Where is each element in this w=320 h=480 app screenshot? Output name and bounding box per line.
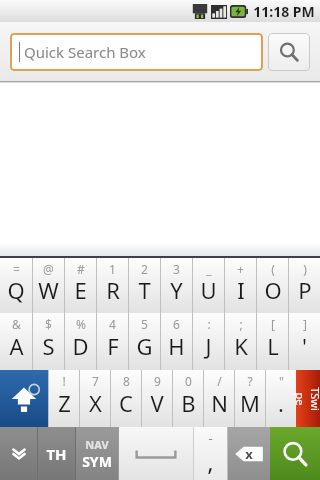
staticText: D [72, 331, 89, 361]
staticText: M [240, 388, 260, 418]
staticText: ( [271, 261, 275, 277]
staticText: R [106, 275, 120, 305]
button[interactable]: " [266, 370, 296, 427]
staticText: K [234, 331, 248, 361]
staticText: % [76, 316, 86, 332]
staticText: = [13, 261, 20, 277]
staticText: S [42, 331, 55, 361]
staticText: E [74, 275, 87, 305]
button[interactable]: ; [225, 313, 256, 370]
staticText: 2 [141, 261, 148, 277]
staticText: 6 [173, 316, 180, 332]
button[interactable]: % [65, 313, 96, 370]
button[interactable]: Space [119, 427, 193, 480]
staticText: 3 [173, 261, 180, 277]
staticText: P [298, 275, 312, 305]
button[interactable]: Backspace [228, 427, 270, 480]
button[interactable]: _ [193, 258, 224, 313]
staticText: TSwipe [293, 387, 320, 411]
staticText: ' [302, 331, 307, 361]
staticText: NAV [85, 437, 109, 452]
staticText: J [205, 331, 212, 361]
button[interactable]: - [194, 427, 227, 480]
staticText: Quick Search Box [24, 42, 146, 62]
staticText: Q [7, 275, 25, 305]
button[interactable]: ! [49, 370, 79, 427]
button[interactable]: / [204, 370, 234, 427]
staticText: C [119, 388, 133, 418]
button[interactable]: 1 [97, 258, 128, 313]
staticText: 8 [123, 373, 130, 389]
button[interactable]: $ [33, 313, 64, 370]
staticText: T [138, 275, 151, 305]
staticText: ] [303, 316, 307, 332]
button[interactable]: 7 [80, 370, 110, 427]
button[interactable]: [ [257, 313, 288, 370]
staticText: L [267, 331, 279, 361]
button[interactable]: : [193, 313, 224, 370]
staticText: # [77, 261, 85, 277]
button[interactable]: 5 [129, 313, 160, 370]
staticText: O [264, 275, 282, 305]
staticText: B [181, 388, 196, 418]
staticText: @ [43, 261, 54, 277]
staticText: 5 [141, 316, 148, 332]
staticText: ) [303, 261, 307, 277]
staticText: 4 [109, 316, 116, 332]
staticText: TH [46, 444, 67, 464]
staticText: _ [206, 261, 212, 277]
button[interactable]: 6 [161, 313, 192, 370]
button[interactable]: Shift [0, 370, 48, 427]
button[interactable]: @ [33, 258, 64, 313]
button[interactable]: ) [289, 258, 320, 313]
button[interactable]: Quick Search Box [10, 33, 263, 71]
button[interactable]: 8 [111, 370, 141, 427]
staticText: F [107, 331, 119, 361]
staticText: A [9, 331, 24, 361]
staticText: x [245, 445, 253, 463]
staticText: - [208, 429, 213, 447]
button[interactable]: Search [270, 427, 320, 480]
button[interactable]: 3 [161, 258, 192, 313]
button[interactable]: & [0, 313, 32, 370]
staticText: W [38, 275, 59, 305]
staticText: 0 [185, 373, 192, 389]
staticText: " [279, 373, 284, 389]
button[interactable]: Hide keyboard [0, 427, 37, 480]
staticText: ? [247, 373, 253, 389]
button[interactable]: 9 [142, 370, 172, 427]
button[interactable]: 2 [129, 258, 160, 313]
staticText: 9 [154, 373, 161, 389]
staticText: [ [271, 316, 275, 332]
staticText: G [136, 331, 153, 361]
button[interactable]: # [65, 258, 96, 313]
button[interactable]: ( [257, 258, 288, 313]
button[interactable]: + [225, 258, 256, 313]
staticText: I [237, 275, 245, 305]
staticText: SYM [82, 452, 112, 471]
staticText: / [217, 373, 222, 389]
staticText: ; [239, 316, 243, 332]
staticText: X [89, 388, 102, 418]
button[interactable]: 0 [173, 370, 203, 427]
button[interactable]: = [0, 258, 32, 313]
staticText: $ [45, 316, 52, 332]
staticText: . [278, 388, 284, 418]
staticText: + [237, 261, 244, 277]
button[interactable]: TH [38, 427, 75, 480]
staticText: N [211, 388, 228, 418]
button[interactable]: ? [235, 370, 265, 427]
button[interactable]: TSwipe [296, 370, 320, 427]
staticText: 1 [109, 261, 116, 277]
staticText: H [168, 331, 185, 361]
button[interactable]: ] [289, 313, 320, 370]
staticText: Z [58, 388, 71, 418]
staticText: Y [170, 275, 183, 305]
staticText: U [200, 275, 217, 305]
button[interactable]: NAV [76, 427, 118, 480]
staticText: : [207, 316, 211, 332]
staticText: V [150, 388, 164, 418]
button[interactable]: Search [268, 33, 310, 71]
staticText: 11:18 PM [253, 2, 315, 21]
button[interactable]: 4 [97, 313, 128, 370]
